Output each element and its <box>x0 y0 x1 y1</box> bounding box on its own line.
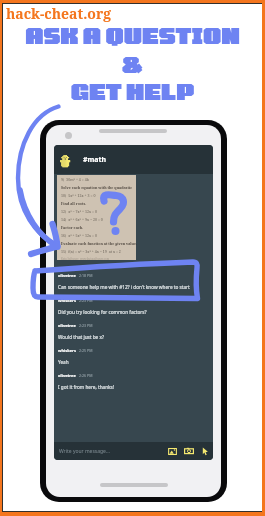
staticText: olivetree <box>58 273 76 278</box>
other: Channel avatar <box>59 154 71 167</box>
staticText: I got it from here, thanks! <box>58 384 115 390</box>
staticText: 15) f(x) = x³ − 3x² + 4x − 19 at x = 2 <box>61 249 121 257</box>
other: Camera <box>184 446 194 456</box>
button[interactable]: olivetree <box>54 319 213 343</box>
staticText: 16) x³ + 5x² + 12x = 0 <box>61 233 97 241</box>
staticText: Factor each. <box>61 225 84 233</box>
staticText: Solve each equation with the quadratic f… <box>61 185 140 193</box>
staticText: whiskers <box>58 348 76 353</box>
staticText: Kuta Software www.kutasoftware.com <box>61 257 110 262</box>
staticText: 12) x³ − 7x² + 12x = 0 <box>61 209 97 217</box>
staticText: & <box>0 51 265 77</box>
staticText: Would that just be x? <box>58 334 104 340</box>
other: Attach image <box>168 447 177 456</box>
staticText: Did you try looking for common factors? <box>58 309 147 315</box>
staticText: 2:26 PM <box>79 373 93 378</box>
button[interactable]: whiskers <box>54 344 213 368</box>
staticText: GET HELP <box>0 78 265 104</box>
staticText: olivetree <box>58 373 76 378</box>
staticText: Find all roots. <box>61 201 87 209</box>
staticText: Can someone help me with #12? i don't kn… <box>58 284 190 290</box>
staticText: Write your message... <box>59 448 110 455</box>
staticText: hack-cheat.org <box>6 4 112 23</box>
button[interactable]: Channel avatar <box>54 145 213 174</box>
button[interactable]: Write your message... <box>54 442 213 460</box>
staticText: olivetree <box>58 323 76 328</box>
staticText: 9) 30m² + 4 = 4b <box>61 177 89 185</box>
staticText: 2:18 PM <box>79 273 93 278</box>
staticText: 2:23 PM <box>79 298 93 303</box>
staticText: 2:25 PM <box>79 348 93 353</box>
staticText: 14) x³ + 6x² + 9x − 20 = 0 <box>61 217 103 225</box>
staticText: whiskers <box>58 298 76 303</box>
staticText: ASK A QUESTION <box>0 22 265 48</box>
staticText: 10) 5x² + 12x + 3 = 0 <box>61 193 96 201</box>
other: Send <box>201 447 210 456</box>
staticText: #math <box>83 155 107 165</box>
button[interactable]: olivetree <box>54 269 213 293</box>
staticText: Evaluate each function at the given valu… <box>61 241 138 249</box>
staticText: 2:23 PM <box>79 323 93 328</box>
button[interactable]: whiskers <box>54 294 213 318</box>
button[interactable]: olivetree <box>54 369 213 393</box>
staticText: Yeah <box>58 359 69 365</box>
